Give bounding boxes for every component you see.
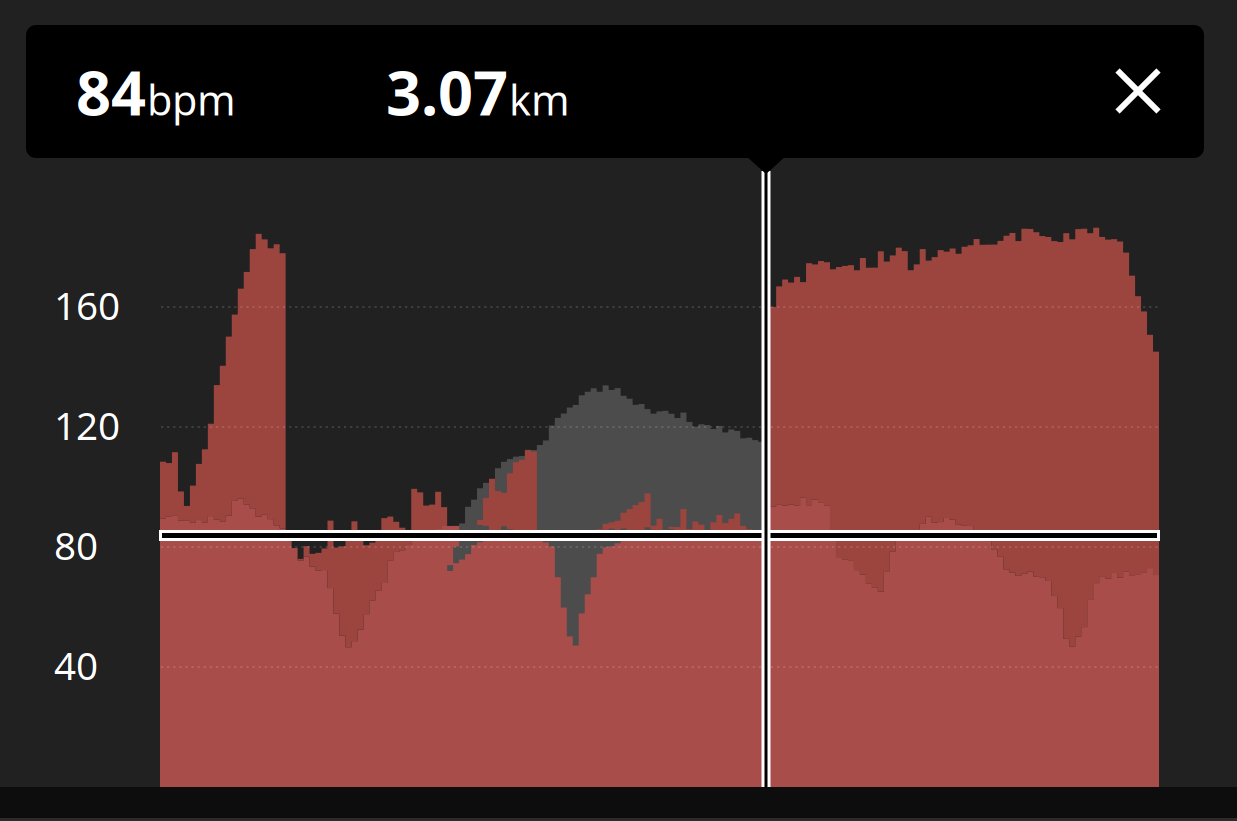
- staticText: 160: [54, 279, 120, 331]
- staticText: 3.07: [386, 51, 508, 132]
- staticText: 120: [54, 399, 120, 451]
- staticText: bpm: [147, 72, 236, 127]
- staticText: 40: [54, 639, 98, 691]
- staticText: 80: [54, 519, 98, 571]
- staticText: km: [509, 72, 570, 127]
- staticText: 84: [76, 51, 146, 132]
- button[interactable]: Close: [1096, 49, 1180, 133]
